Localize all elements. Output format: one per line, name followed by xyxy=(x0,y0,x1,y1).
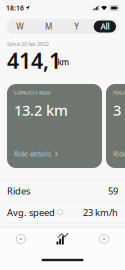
button[interactable]: Routes xyxy=(0,228,42,250)
staticText: 13.2 km xyxy=(14,100,68,120)
staticText: 3 xyxy=(113,100,121,120)
staticText: HIGHEST SPEED xyxy=(113,89,125,96)
staticText: Avg. speed xyxy=(7,206,55,218)
staticText: M xyxy=(45,21,52,32)
button[interactable]: Y xyxy=(62,20,91,32)
button[interactable]: HIGHEST SPEED xyxy=(106,84,125,168)
button[interactable]: Rides xyxy=(0,180,125,201)
button[interactable]: LONGEST RIDE xyxy=(7,84,102,168)
staticText: km xyxy=(57,57,69,67)
staticText: Ride details xyxy=(14,150,51,158)
staticText: Rides xyxy=(7,185,30,197)
staticText: 23 km/h xyxy=(83,206,118,218)
button[interactable]: M xyxy=(34,20,62,32)
staticText: W xyxy=(16,21,24,32)
button[interactable]: Avg. speed xyxy=(0,202,125,223)
staticText: Ride details xyxy=(113,150,125,158)
staticText: Since 20 Apr 2022 xyxy=(7,40,49,48)
button[interactable]: W xyxy=(6,20,34,32)
staticText: All xyxy=(100,21,109,32)
staticText: Y xyxy=(74,21,79,32)
button[interactable]: Profile xyxy=(83,228,125,250)
staticText: LONGEST RIDE xyxy=(14,89,51,96)
staticText: 414,1 xyxy=(7,46,61,75)
staticText: 18:16 xyxy=(6,4,24,12)
staticText: 59 xyxy=(108,185,118,197)
button[interactable]: Statistics xyxy=(42,228,83,250)
button[interactable]: All xyxy=(91,20,119,32)
